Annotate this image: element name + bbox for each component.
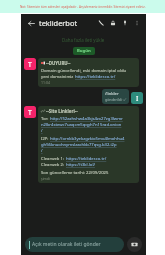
staticText: http://ornkb3yekzgzkio5mo4lmohhu4 (50, 136, 125, 142)
button[interactable]: --DUYURU-- (38, 58, 139, 87)
button[interactable]: T (24, 58, 36, 70)
staticText: 11:04 (41, 80, 50, 85)
button[interactable]: /linkler (102, 89, 129, 104)
staticText: https://teklider.co.tr/ (66, 156, 107, 162)
button[interactable]: Açık metin olarak ileti gönder (25, 237, 124, 252)
staticText: Domain güncellendi, eski domain iptal ol… (41, 68, 127, 74)
staticText: /linkler (105, 91, 119, 97)
staticText: / (41, 148, 43, 154)
staticText: Açık metin olarak ileti gönder (32, 241, 101, 248)
staticText: şimdi (41, 176, 50, 181)
button[interactable]: --Site Linkleri-- (38, 106, 139, 183)
button[interactable]: Attach (119, 17, 131, 29)
staticText: Bugün (77, 48, 91, 54)
staticText: T (28, 60, 32, 69)
staticText: tekliderbot (39, 18, 78, 28)
button[interactable]: Disappearing messages (107, 17, 119, 29)
staticText: https://t3kl.lol/ (66, 162, 96, 168)
button[interactable]: More options (131, 17, 143, 29)
staticText: I2P: (41, 136, 50, 142)
staticText: T (28, 108, 32, 117)
button[interactable]: I (131, 92, 143, 104)
staticText: Daha fazla ileti yükle (62, 37, 105, 43)
button[interactable]: Call (95, 17, 107, 29)
staticText: Clearweb 2: (41, 162, 66, 168)
staticText: --DUYURU-- (46, 60, 71, 66)
staticText: Not: Sitemizin tüm adresleri aşağıdadır … (20, 5, 146, 9)
staticText: http://52azhshw4a3kjs4zx27zg3lwmr (50, 116, 123, 122)
staticText: Tor: (41, 116, 50, 122)
staticText: yeni domainimiz (41, 74, 75, 80)
staticText: https://teklider.co.tr/ (75, 74, 116, 80)
staticText: gönderildi (105, 97, 123, 102)
button[interactable]: Bugün (73, 47, 95, 55)
button[interactable]: Back (25, 17, 37, 29)
staticText: I (136, 94, 139, 103)
button[interactable]: T (24, 106, 36, 118)
staticText: Clearweb 1: (41, 156, 66, 162)
button[interactable]: Camera (127, 237, 142, 252)
staticText: n2lkr4stewc7uaqcm5qqyh7n15rad.onion (41, 122, 122, 128)
staticText: / (41, 128, 43, 134)
staticText: Son güncelleme tarihi: 22/09/2025 (41, 170, 109, 176)
staticText: gh56knuohnymslzachkb77qsg.b32.i2p (41, 142, 117, 148)
staticText: --Site Linkleri-- (46, 108, 78, 114)
